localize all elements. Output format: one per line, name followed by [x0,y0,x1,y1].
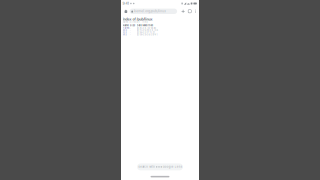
staticText: Search with [138,165,155,168]
staticText: - [130,31,131,34]
staticText: Parent Directory · Help [123,21,148,24]
button[interactable]: Parent [123,27,198,29]
staticText: v4.x [123,33,127,36]
staticText: v3.x [123,31,127,34]
staticText: Date Modified [137,24,154,27]
staticText: Name [123,24,129,27]
staticText: Size [130,24,135,27]
button[interactable]: Home [122,7,130,15]
button[interactable]: Tabs [186,7,193,15]
staticText: 9:41 [123,1,129,6]
staticText: kernel.org/pub/linux [134,9,166,13]
button[interactable]: New tab [180,7,186,15]
button[interactable]: Search with [137,163,183,170]
button[interactable]: v4.x [123,33,198,36]
button[interactable]: Menu [193,7,198,15]
staticText: Parent [123,27,130,29]
staticText: Google Lens [163,165,182,168]
staticText: - [130,27,131,29]
staticText: 2019-03-08 09:41 [137,33,158,36]
staticText: - [130,29,131,32]
staticText: 2011-05-19 04:06 [137,29,158,32]
button[interactable]: v3.x [123,31,198,33]
staticText: - [130,33,131,36]
button[interactable]: kernel.org/pub/linux [130,9,177,14]
staticText: 2016-02-17 11:22 [137,31,155,34]
button[interactable]: v2.6 [123,29,198,31]
staticText: Index of /pub/linux [123,17,153,21]
staticText: v2.6 [123,29,127,32]
staticText: 2021-04-12 18:30 [137,27,157,29]
